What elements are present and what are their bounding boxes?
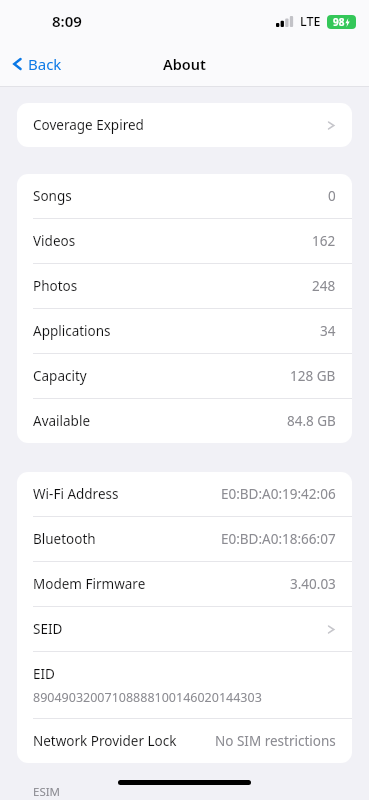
staticText: 0 [328,187,336,205]
staticText: ESIM [33,784,61,800]
button[interactable]: Wi-Fi Address [17,472,352,516]
button[interactable]: EID [17,652,352,718]
button[interactable]: Videos [17,219,352,263]
staticText: 128 GB [290,367,336,385]
staticText: E0:BD:A0:19:42:06 [221,485,336,503]
staticText: Bluetooth [33,530,96,548]
staticText: Photos [33,277,78,295]
staticText: EID [33,665,55,683]
button[interactable]: SEID [17,607,352,651]
staticText: 98 [333,15,345,29]
button[interactable]: Coverage Expired [17,103,352,147]
staticText: 162 [312,232,336,250]
staticText: Videos [33,232,76,250]
staticText: Capacity [33,367,87,385]
staticText: 3.40.03 [290,575,336,593]
button[interactable]: Applications [17,309,352,353]
staticText: 34 [320,322,336,340]
button[interactable]: Bluetooth [17,517,352,561]
button[interactable]: Network Provider Lock [17,719,352,763]
staticText: 89049032007108888100146020144303 [33,689,262,706]
button[interactable]: Songs [17,174,352,218]
other: Home indicator [118,780,251,785]
staticText: Back [28,54,62,74]
staticText: Coverage Expired [33,116,144,134]
staticText: Wi-Fi Address [33,485,119,503]
button[interactable]: Photos [17,264,352,308]
staticText: Available [33,412,90,430]
staticText: 8:09 [52,11,82,31]
button[interactable]: Capacity [17,354,352,398]
staticText: SEID [33,620,63,638]
staticText: Modem Firmware [33,575,146,593]
staticText: Applications [33,322,111,340]
button[interactable]: Available [17,399,352,443]
button[interactable]: Modem Firmware [17,562,352,606]
staticText: 84.8 GB [287,412,336,430]
staticText: About [163,54,206,74]
staticText: E0:BD:A0:18:66:07 [221,530,336,548]
button[interactable]: Back [8,49,66,79]
staticText: LTE [300,13,321,30]
staticText: Network Provider Lock [33,732,177,750]
staticText: 248 [312,277,336,295]
staticText: Songs [33,187,72,205]
staticText: No SIM restrictions [215,732,336,750]
